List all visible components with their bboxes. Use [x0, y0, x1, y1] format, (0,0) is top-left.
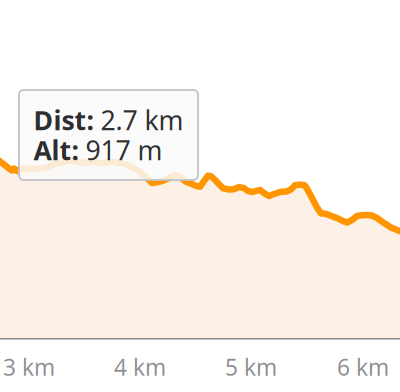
- staticText: 4 km: [114, 352, 166, 382]
- staticText: 6 km: [337, 352, 389, 382]
- staticText: 2.7 km: [93, 102, 183, 138]
- staticText: 5 km: [225, 352, 277, 382]
- staticText: Dist:: [33, 102, 93, 138]
- staticText: 3 km: [3, 352, 55, 382]
- staticText: Alt:: [33, 132, 78, 168]
- staticText: 917 m: [78, 132, 162, 168]
